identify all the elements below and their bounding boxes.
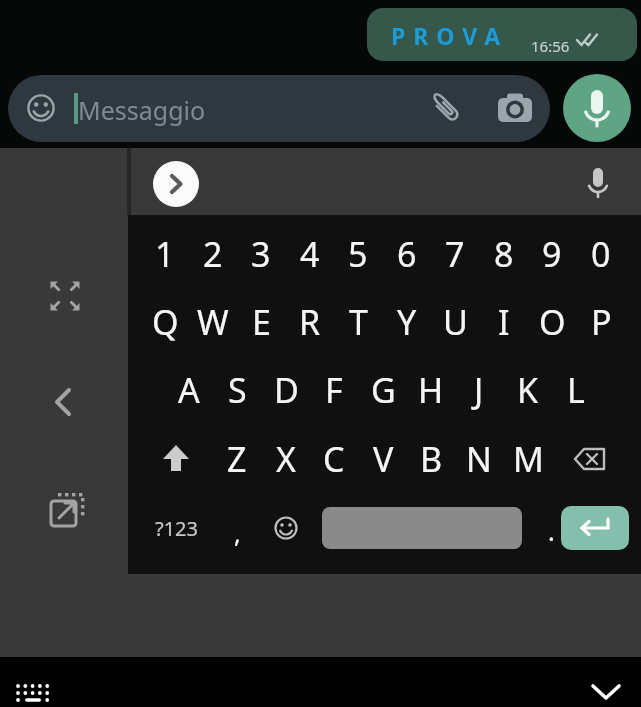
staticText: 0 <box>591 231 611 277</box>
button[interactable] <box>14 679 54 705</box>
button[interactable]: 5 <box>334 221 382 287</box>
staticText: T <box>349 299 368 345</box>
button[interactable]: D <box>262 357 310 423</box>
button[interactable] <box>591 682 621 702</box>
staticText: U <box>443 299 468 345</box>
button[interactable]: A <box>165 357 213 423</box>
button[interactable]: O <box>528 289 576 355</box>
button[interactable] <box>567 426 615 492</box>
button[interactable]: 3 <box>237 221 285 287</box>
button[interactable]: 0 <box>577 221 625 287</box>
staticText: Messaggio <box>78 93 206 127</box>
staticText: D <box>274 367 299 413</box>
staticText: A <box>178 367 200 413</box>
button[interactable]: 2 <box>189 221 237 287</box>
staticText: C <box>323 436 345 482</box>
staticText: 3 <box>251 231 271 277</box>
button[interactable]: R <box>286 289 334 355</box>
staticText: E <box>252 299 271 345</box>
staticText: K <box>517 367 539 413</box>
staticText: H <box>418 367 444 413</box>
button[interactable]: G <box>359 357 407 423</box>
staticText: . <box>548 514 555 548</box>
staticText: 8 <box>494 231 514 277</box>
button[interactable]: 1 <box>141 221 189 287</box>
button[interactable]: Q <box>141 289 189 355</box>
button[interactable]: X <box>262 426 310 492</box>
staticText: F <box>325 367 343 413</box>
button[interactable] <box>153 161 199 207</box>
button[interactable]: 7 <box>431 221 479 287</box>
button[interactable] <box>48 387 78 417</box>
button[interactable]: 6 <box>383 221 431 287</box>
button[interactable] <box>322 507 522 549</box>
button[interactable]: U <box>431 289 479 355</box>
staticText: 2 <box>203 231 223 277</box>
staticText: L <box>567 367 585 413</box>
staticText: 16:56 <box>531 36 570 56</box>
button[interactable]: Y <box>383 289 431 355</box>
staticText: W <box>197 299 229 345</box>
staticText: R <box>299 299 321 345</box>
button[interactable] <box>563 74 631 142</box>
staticText: X <box>276 436 296 482</box>
button[interactable] <box>48 279 82 313</box>
button[interactable]: H <box>407 357 455 423</box>
staticText: Q <box>152 299 179 345</box>
staticText: 9 <box>542 231 562 277</box>
button[interactable] <box>8 75 550 142</box>
staticText: 1 <box>155 231 175 277</box>
button[interactable]: 4 <box>286 221 334 287</box>
button[interactable]: T <box>334 289 382 355</box>
button[interactable]: B <box>407 426 455 492</box>
staticText: J <box>474 367 484 413</box>
button[interactable]: C <box>310 426 358 492</box>
button[interactable]: , <box>213 500 261 566</box>
button[interactable]: ?123 <box>152 495 200 561</box>
button[interactable]: 8 <box>480 221 528 287</box>
button[interactable]: J <box>455 357 503 423</box>
staticText: V <box>373 436 394 482</box>
staticText: Y <box>397 299 417 345</box>
staticText: B <box>420 436 443 482</box>
staticText: 4 <box>300 231 320 277</box>
staticText: ?123 <box>155 515 198 542</box>
button[interactable] <box>584 166 612 200</box>
staticText: M <box>513 436 544 482</box>
button[interactable] <box>262 495 310 561</box>
button[interactable]: Z <box>213 426 261 492</box>
staticText: Z <box>227 436 247 482</box>
button[interactable] <box>152 426 200 492</box>
button[interactable]: I <box>480 289 528 355</box>
staticText: PROVA <box>391 20 509 51</box>
button[interactable]: S <box>213 357 261 423</box>
button[interactable] <box>367 8 637 61</box>
button[interactable]: P <box>577 289 625 355</box>
button[interactable]: . <box>527 498 575 564</box>
staticText: 7 <box>445 231 465 277</box>
button[interactable]: K <box>504 357 552 423</box>
button[interactable]: W <box>189 289 237 355</box>
button[interactable] <box>561 506 629 550</box>
button[interactable]: M <box>504 426 552 492</box>
button[interactable] <box>47 490 87 530</box>
button[interactable]: E <box>237 289 285 355</box>
staticText: I <box>498 299 510 345</box>
button[interactable] <box>497 92 533 124</box>
button[interactable]: V <box>359 426 407 492</box>
button[interactable]: 9 <box>528 221 576 287</box>
staticText: G <box>371 367 396 413</box>
staticText: O <box>539 299 566 345</box>
staticText: 6 <box>397 231 417 277</box>
button[interactable]: N <box>455 426 503 492</box>
button[interactable] <box>428 90 464 126</box>
staticText: N <box>466 436 492 482</box>
staticText: P <box>591 299 612 345</box>
staticText: 5 <box>348 231 368 277</box>
staticText: , <box>234 516 241 550</box>
staticText: S <box>228 367 247 413</box>
button[interactable]: L <box>552 357 600 423</box>
button[interactable]: F <box>310 357 358 423</box>
